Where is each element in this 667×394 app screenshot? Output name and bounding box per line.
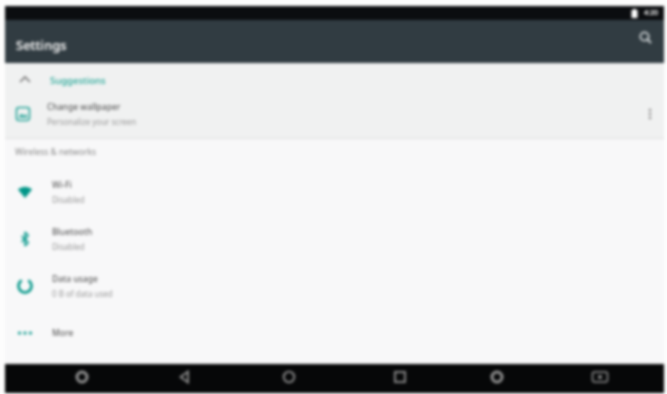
button[interactable] <box>69 364 95 390</box>
button[interactable]: More <box>5 310 664 356</box>
button[interactable] <box>484 364 510 390</box>
button[interactable] <box>172 364 198 390</box>
button[interactable] <box>587 364 613 390</box>
staticText: Wireless & networks <box>15 146 97 158</box>
staticText: 0 B of data used <box>52 288 113 299</box>
staticText: Disabled <box>52 194 85 205</box>
staticText: More <box>52 327 74 339</box>
staticText: 4:20 <box>644 8 658 18</box>
staticText: Data usage <box>52 273 98 285</box>
button[interactable]: Suggestions <box>5 65 664 95</box>
staticText: Bluetooth <box>52 226 93 238</box>
button[interactable]: Bluetooth <box>5 216 664 262</box>
staticText: Settings <box>16 36 67 54</box>
staticText: Change wallpaper <box>47 101 121 113</box>
button[interactable]: Change wallpaper <box>5 93 664 135</box>
button[interactable] <box>636 28 654 46</box>
button[interactable] <box>276 364 302 390</box>
staticText: Disabled <box>52 241 85 252</box>
staticText: Suggestions <box>50 74 106 87</box>
staticText: Personalize your screen <box>47 116 137 127</box>
button[interactable]: Wi-Fi <box>5 169 664 215</box>
button[interactable]: Data usage <box>5 263 664 309</box>
staticText: Wi-Fi <box>52 179 72 191</box>
button[interactable] <box>387 364 413 390</box>
